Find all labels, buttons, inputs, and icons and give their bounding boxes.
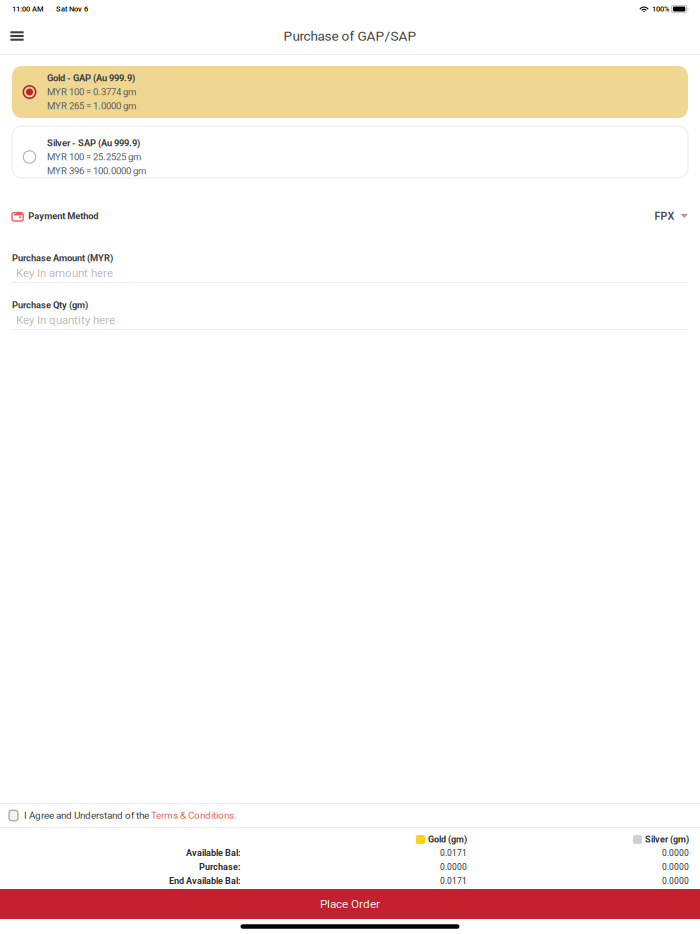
staticText: Silver - SAP (Au 999.9) <box>47 137 140 148</box>
staticText: MYR 396 = 100.0000 gm <box>47 165 146 177</box>
staticText: Sat Nov 6 <box>56 5 88 13</box>
staticText: Purchase Amount (MYR) <box>12 252 113 263</box>
staticText: Key In amount here <box>16 266 113 280</box>
staticText: 0.0171 <box>440 876 467 886</box>
staticText: 0.0171 <box>440 848 467 858</box>
staticText: Key In quantity here <box>16 313 115 327</box>
staticText: MYR 100 = 25.2525 gm <box>47 151 141 163</box>
staticText: Purchase Qty (gm) <box>12 299 88 310</box>
staticText: I Agree and Understand of the <box>24 810 151 821</box>
staticText: Payment Method <box>28 210 98 221</box>
staticText: MYR 265 = 1.0000 gm <box>47 100 136 112</box>
staticText: 0.0000 <box>662 848 689 858</box>
staticText: MYR 100 = 0.3774 gm <box>47 86 136 98</box>
button[interactable]: Gold - GAP (Au 999.9) <box>12 66 688 118</box>
button[interactable]: FPX <box>655 208 688 224</box>
staticText: Place Order <box>320 897 380 911</box>
staticText: Available Bal: <box>186 848 241 858</box>
staticText: 11:00 AM <box>12 5 44 13</box>
staticText: Purchase: <box>199 862 241 872</box>
staticText: FPX <box>655 210 675 222</box>
button[interactable]: I agree to the Terms and Conditions <box>3 804 24 827</box>
staticText: Gold (gm) <box>428 834 467 845</box>
staticText: 0.0000 <box>440 862 467 872</box>
staticText: End Available Bal: <box>169 876 241 886</box>
button[interactable]: Terms & Conditions. <box>151 810 237 821</box>
staticText: Gold - GAP (Au 999.9) <box>47 72 135 83</box>
button[interactable]: Menu <box>4 18 30 54</box>
staticText: Purchase of GAP/SAP <box>283 28 416 44</box>
staticText: Silver (gm) <box>645 834 689 845</box>
staticText: Terms & Conditions. <box>151 810 237 821</box>
button[interactable]: Silver - SAP (Au 999.9) <box>12 126 688 178</box>
staticText: 100% <box>652 5 669 13</box>
staticText: 0.0000 <box>662 876 689 886</box>
staticText: 0.0000 <box>662 862 689 872</box>
button[interactable]: Place Order <box>0 889 700 919</box>
